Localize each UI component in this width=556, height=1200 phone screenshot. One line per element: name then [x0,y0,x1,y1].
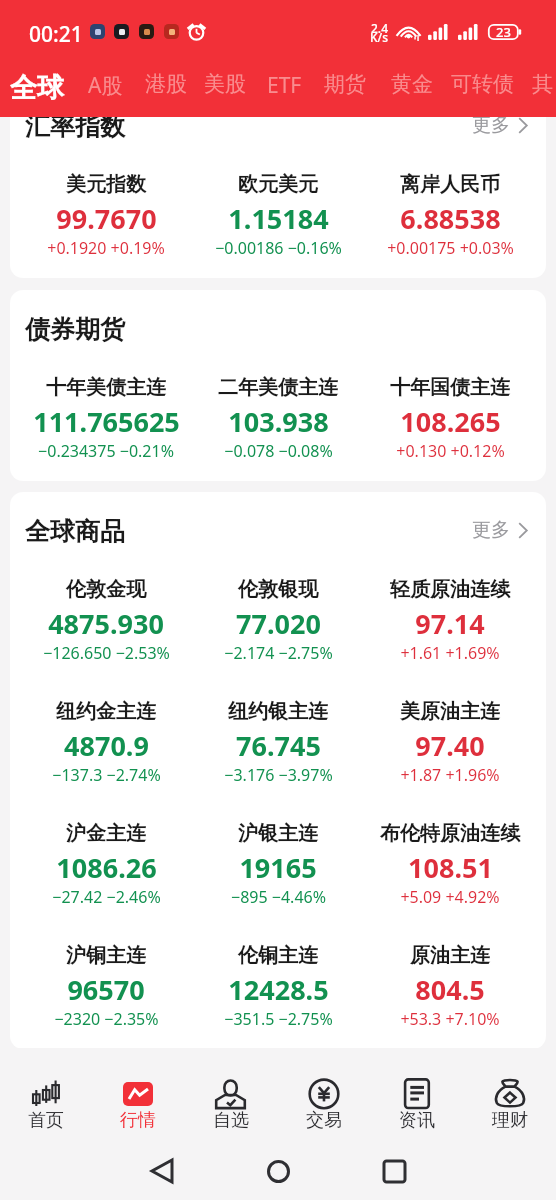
staticText: 全球 [10,71,64,105]
staticText: A股 [88,71,123,100]
staticText: −126.650 −2.53% [43,642,170,664]
button[interactable]: 沪铜主连 [20,921,192,1043]
staticText: +1.61 +1.69% [400,642,500,664]
staticText: 自选 [213,1109,249,1132]
staticText: −0.234375 −0.21% [38,440,174,462]
button[interactable]: ETF [267,66,302,105]
button[interactable]: Home [220,1140,336,1200]
staticText: 港股 [145,71,187,97]
staticText: 103.938 [228,403,329,440]
staticText: 欧元美元 [238,172,318,197]
staticText: 更多 [472,518,510,542]
button[interactable]: 港股 [145,66,187,102]
staticText: +53.3 +7.10% [400,1008,500,1030]
staticText: 轻质原油连续 [390,577,510,602]
button[interactable]: 资讯 [370,1048,463,1140]
staticText: −2320 −2.35% [54,1008,159,1030]
button[interactable]: 二年美债主连 [192,353,364,475]
staticText: −2.174 −2.75% [224,642,333,664]
staticText: 期货 [324,71,366,97]
staticText: −27.42 −2.46% [52,886,161,908]
staticText: 12428.5 [228,971,329,1008]
staticText: −3.176 −3.97% [224,764,333,786]
staticText: 交易 [306,1109,342,1132]
button[interactable]: A股 [88,66,123,105]
staticText: 债券期货 [25,314,125,345]
button[interactable]: 黄金 [391,66,433,102]
staticText: 布伦特原油连续 [380,821,520,846]
staticText: 6.88538 [400,200,501,237]
staticText: 伦敦银现 [238,577,318,602]
button[interactable]: 美元指数 [20,150,192,272]
button[interactable]: 可转债 [451,66,514,102]
button[interactable]: 纽约银主连 [192,677,364,799]
staticText: 00:21 [29,20,83,49]
staticText: ETF [267,71,302,100]
staticText: 111.765625 [33,403,180,440]
button[interactable]: 十年国债主连 [364,353,536,475]
staticText: 96570 [67,971,145,1008]
staticText: −0.00186 −0.16% [215,237,342,259]
staticText: 1.15184 [228,200,329,237]
staticText: 97.40 [415,727,485,764]
button[interactable]: 自选 [184,1048,277,1140]
staticText: −351.5 −2.75% [224,1008,333,1030]
staticText: 沪铜主连 [66,943,146,968]
button[interactable]: 美股 [204,66,246,102]
button[interactable]: 全球 [10,66,64,110]
button[interactable]: 纽约金主连 [20,677,192,799]
staticText: 纽约银主连 [228,699,328,724]
button[interactable]: 首页 [0,1048,92,1140]
staticText: +1.87 +1.96% [400,764,500,786]
staticText: K/s [370,29,389,45]
staticText: 美股 [204,71,246,97]
staticText: 原油主连 [410,943,490,968]
staticText: +5.09 +4.92% [400,886,500,908]
staticText: 99.7670 [56,200,157,237]
staticText: +0.130 +0.12% [396,440,505,462]
button[interactable]: 十年美债主连 [20,353,192,475]
staticText: 76.745 [236,727,321,764]
staticText: 资讯 [399,1109,435,1132]
button[interactable]: Recents [336,1140,452,1200]
button[interactable]: 欧元美元 [192,150,364,272]
button[interactable]: 美原油主连 [364,677,536,799]
staticText: 沪金主连 [66,821,146,846]
button[interactable]: 沪银主连 [192,799,364,921]
button[interactable]: 行情 [92,1048,184,1140]
button[interactable]: 离岸人民币 [364,150,536,272]
staticText: 十年国债主连 [390,375,510,400]
button[interactable]: 更多 [472,113,528,137]
button[interactable]: 理财 [463,1048,556,1140]
staticText: 汇率指数 [25,111,125,142]
button[interactable]: 其 [532,66,553,102]
staticText: 23 [496,23,511,41]
button[interactable]: 伦敦银现 [192,555,364,677]
staticText: 4870.9 [64,727,149,764]
staticText: 2.4 [371,20,388,36]
staticText: 十年美债主连 [46,375,166,400]
button[interactable]: 期货 [324,66,366,102]
staticText: 首页 [28,1109,64,1132]
staticText: 理财 [492,1109,528,1132]
button[interactable]: 更多 [472,518,528,542]
staticText: 伦敦金现 [66,577,146,602]
button[interactable]: 沪金主连 [20,799,192,921]
staticText: 美元指数 [66,172,146,197]
staticText: 其 [532,71,553,97]
staticText: 804.5 [415,971,485,1008]
button[interactable]: 布伦特原油连续 [364,799,536,921]
button[interactable]: 交易 [277,1048,370,1140]
staticText: 97.14 [415,605,485,642]
button[interactable]: 原油主连 [364,921,536,1043]
staticText: 1086.26 [56,849,157,886]
staticText: −0.078 −0.08% [224,440,333,462]
staticText: 行情 [120,1109,156,1132]
staticText: 全球商品 [25,516,125,547]
staticText: −895 −4.46% [231,886,326,908]
button[interactable]: Back [104,1140,220,1200]
button[interactable]: 伦铜主连 [192,921,364,1043]
button[interactable]: 轻质原油连续 [364,555,536,677]
button[interactable]: 伦敦金现 [20,555,192,677]
staticText: 美原油主连 [400,699,500,724]
